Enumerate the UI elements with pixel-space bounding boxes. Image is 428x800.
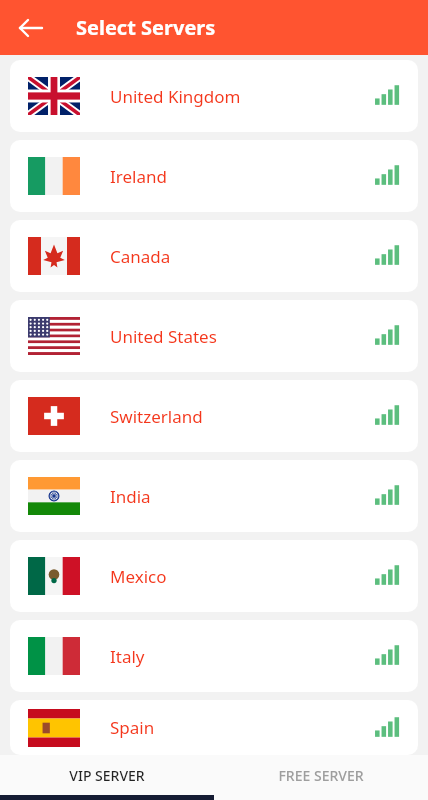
button[interactable]: Spain xyxy=(10,700,418,755)
button[interactable]: FREE SERVER xyxy=(214,755,428,795)
staticText: United States xyxy=(110,325,217,348)
staticText: Select Servers xyxy=(76,14,216,41)
staticText: Ireland xyxy=(110,165,167,188)
button[interactable]: India xyxy=(10,460,418,532)
button[interactable]: Switzerland xyxy=(10,380,418,452)
staticText: Italy xyxy=(110,645,145,668)
staticText: VIP SERVER xyxy=(69,766,145,785)
staticText: Canada xyxy=(110,245,171,268)
staticText: India xyxy=(110,485,151,508)
staticText: Spain xyxy=(110,716,155,739)
staticText: FREE SERVER xyxy=(278,766,364,785)
button[interactable]: United Kingdom xyxy=(10,60,418,132)
button[interactable]: Back xyxy=(14,11,48,45)
button[interactable]: Italy xyxy=(10,620,418,692)
button[interactable]: Canada xyxy=(10,220,418,292)
button[interactable]: Mexico xyxy=(10,540,418,612)
button[interactable]: VIP SERVER xyxy=(0,755,214,795)
staticText: United Kingdom xyxy=(110,85,241,108)
button[interactable]: United States xyxy=(10,300,418,372)
staticText: Switzerland xyxy=(110,405,203,428)
staticText: Mexico xyxy=(110,565,167,588)
button[interactable]: Ireland xyxy=(10,140,418,212)
